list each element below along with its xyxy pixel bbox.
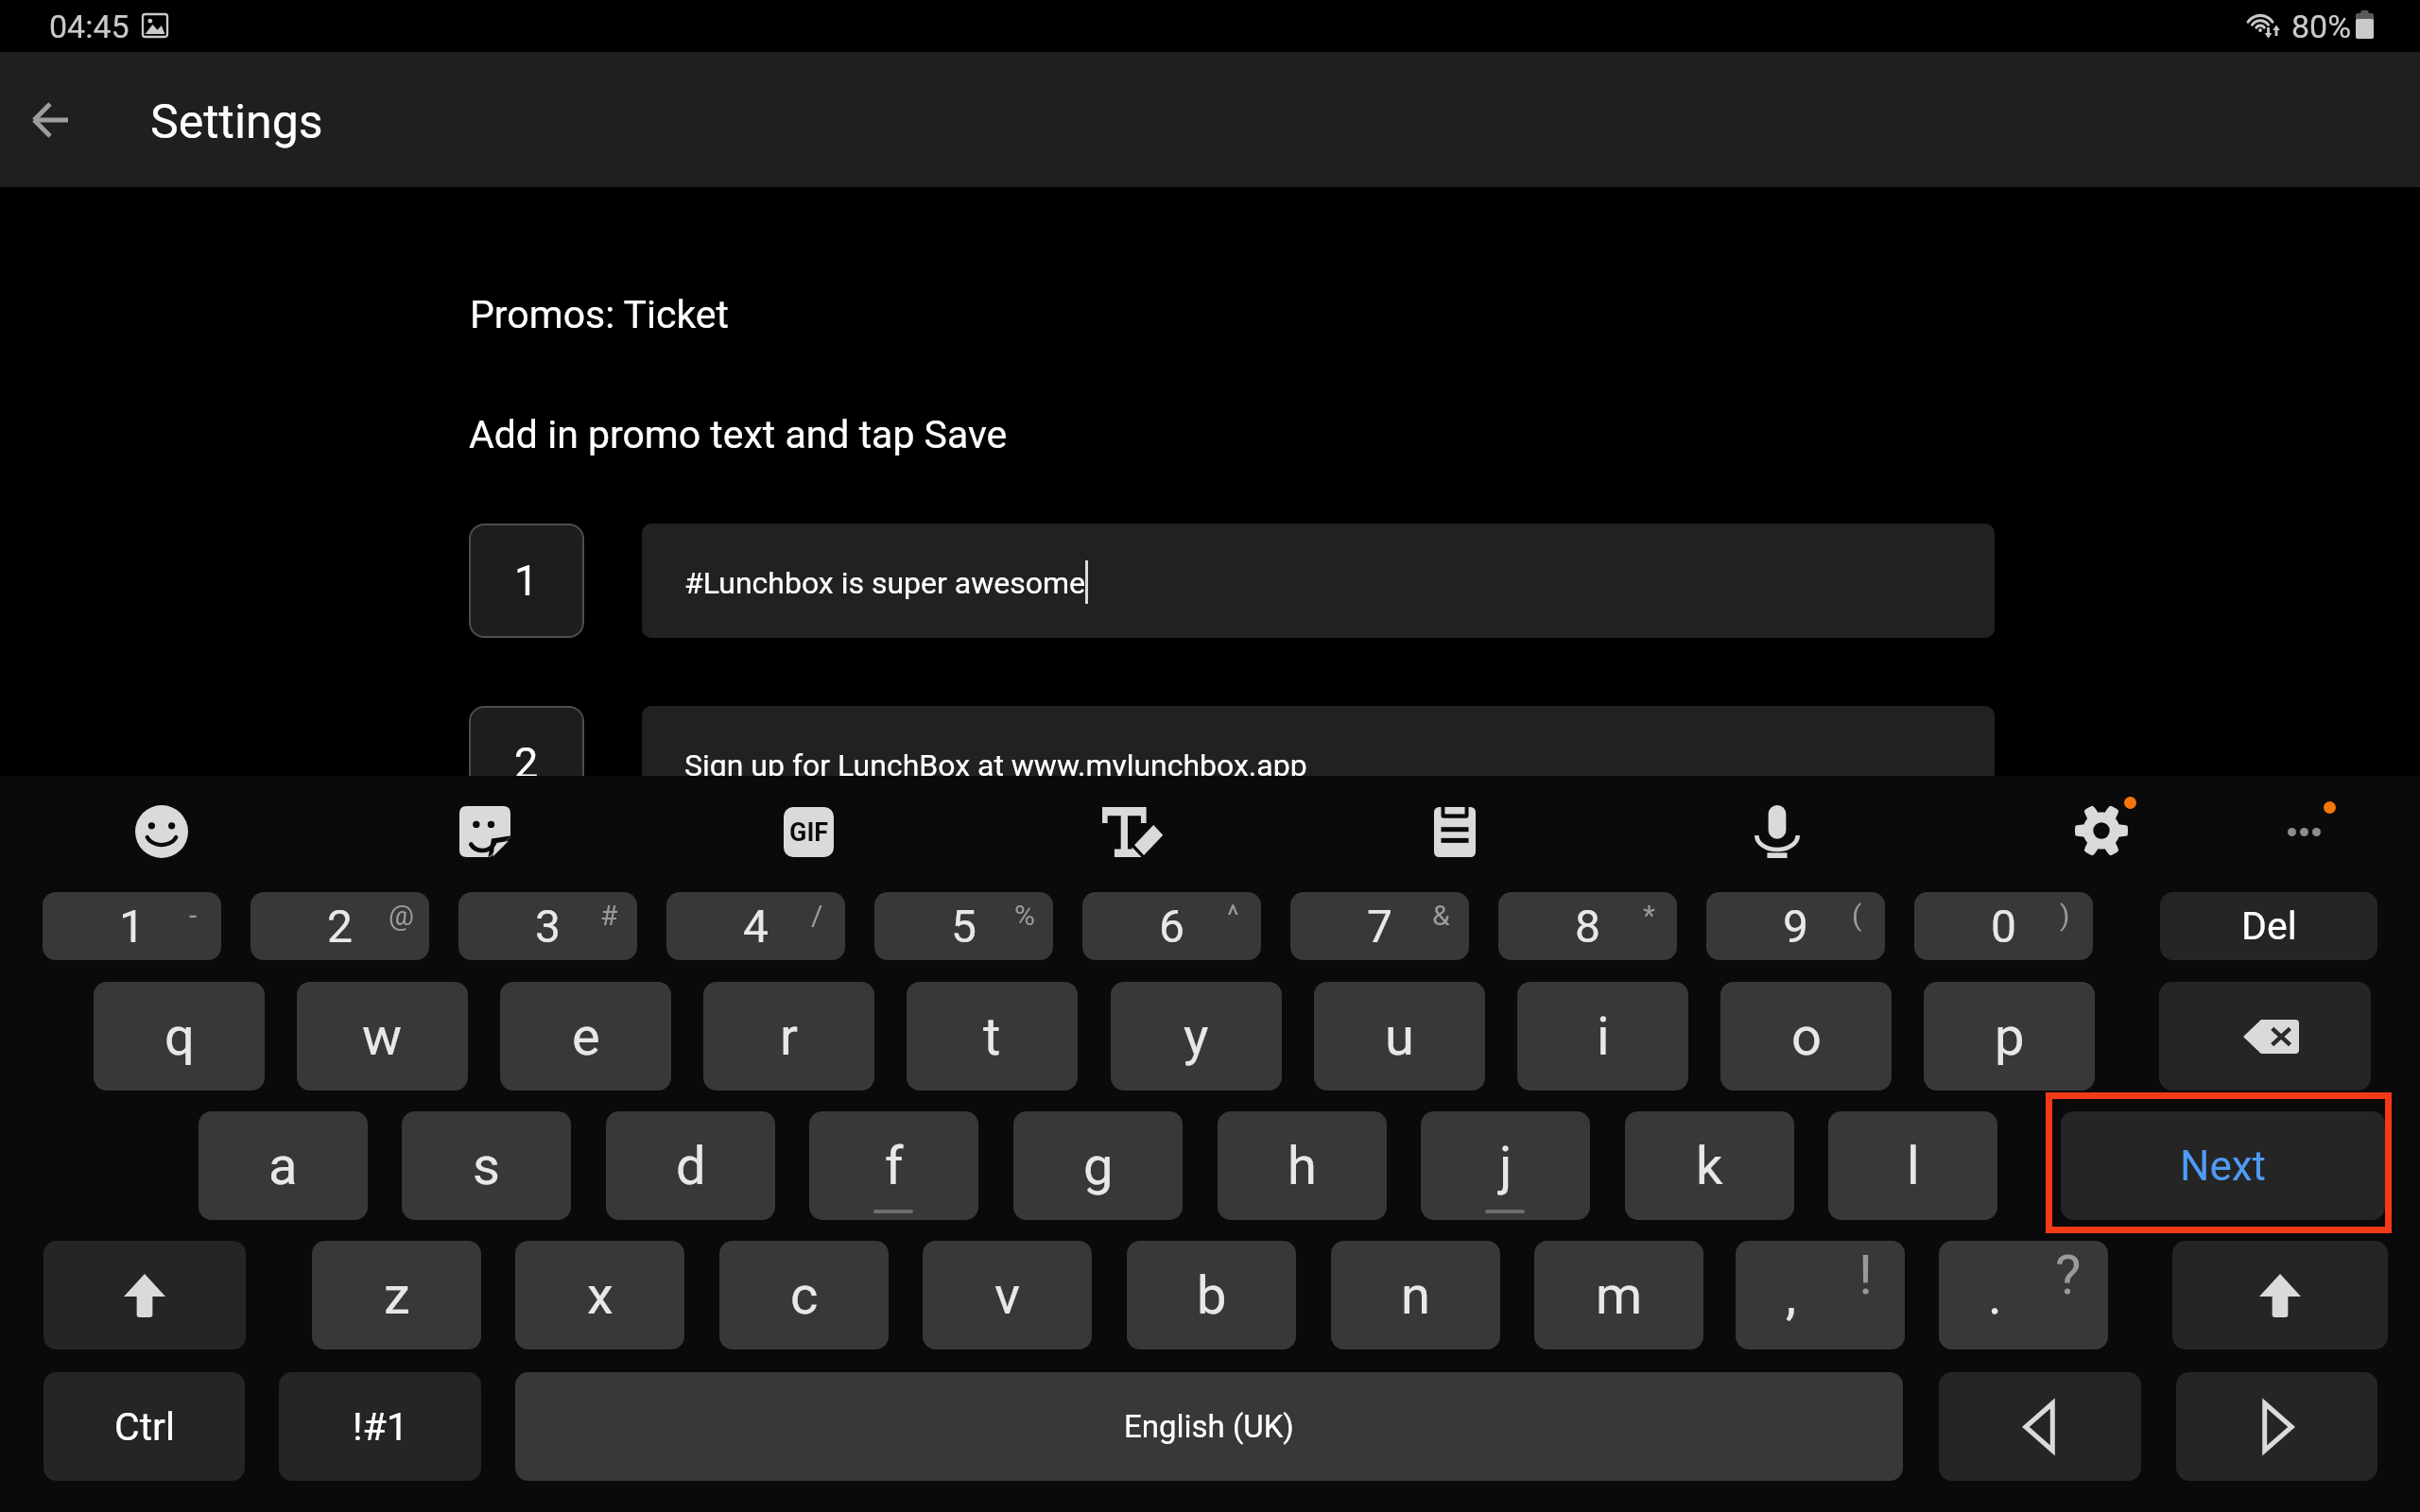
staticText: Promos: Ticket [470,292,729,337]
staticText: Ctrl [114,1404,175,1450]
button[interactable]: v [923,1241,1092,1349]
button[interactable]: p [1924,982,2095,1091]
staticText: , [1786,1264,1797,1327]
staticText: t [983,1005,1001,1068]
button[interactable]: c [719,1241,889,1349]
staticText: 7 [1367,900,1392,953]
button[interactable]: e [500,982,671,1091]
button[interactable]: Move cursor left [1939,1372,2141,1481]
button[interactable]: Settings [2045,775,2158,888]
button[interactable]: r [703,982,874,1091]
staticText: Settings [150,94,323,150]
button[interactable]: #Lunchbox is super awesome [642,524,1995,638]
button[interactable]: 6 [1082,892,1261,960]
staticText: x [587,1264,614,1327]
button[interactable]: Voice input [1720,775,1834,888]
staticText: g [1083,1135,1114,1197]
staticText: GIF [789,817,829,848]
staticText: ) [2060,899,2070,932]
staticText: Sign up for LunchBox at www.mylunchbox.a… [684,747,1307,783]
staticText: 5 [951,900,977,953]
staticText: 8 [1575,900,1600,953]
button[interactable]: d [606,1111,775,1220]
staticText: s [473,1135,500,1197]
button[interactable]: 3 [458,892,637,960]
button[interactable]: Sign up for LunchBox at www.mylunchbox.a… [642,706,1995,820]
staticText: b [1197,1264,1227,1327]
staticText: f [885,1135,904,1197]
staticText: ? [2055,1243,2082,1301]
button[interactable]: f [809,1111,978,1220]
button[interactable]: 4 [666,892,845,960]
button[interactable]: y [1111,982,1282,1091]
button[interactable]: t [907,982,1078,1091]
staticText: n [1401,1264,1430,1327]
button[interactable]: w [297,982,468,1091]
button[interactable]: 8 [1498,892,1677,960]
staticText: p [1995,1005,2025,1068]
staticText: u [1385,1005,1414,1068]
button[interactable]: Ctrl [43,1372,245,1481]
staticText: a [268,1135,298,1197]
staticText: j [1499,1135,1512,1197]
staticText: 1 [514,556,539,606]
button[interactable]: Shift [2172,1241,2388,1349]
staticText: # [600,899,618,932]
button[interactable]: g [1013,1111,1183,1220]
button[interactable]: 9 [1706,892,1885,960]
button[interactable]: o [1720,982,1892,1091]
button[interactable]: Clipboard [1398,775,1512,888]
button[interactable]: !#1 [279,1372,481,1481]
button[interactable]: u [1314,982,1485,1091]
button[interactable]: Emoji [105,775,218,888]
button[interactable]: k [1625,1111,1794,1220]
staticText: ( [1852,899,1862,932]
button[interactable]: Move cursor right [2176,1372,2377,1481]
staticText: - [189,899,198,932]
button[interactable]: i [1517,982,1688,1091]
button[interactable]: GIF [752,775,865,888]
button[interactable]: , [1736,1241,1905,1349]
button[interactable]: Next [2061,1111,2385,1220]
staticText: h [1288,1135,1317,1197]
staticText: 6 [1159,900,1184,953]
button[interactable]: l [1828,1111,1997,1220]
button[interactable]: n [1331,1241,1500,1349]
button[interactable]: 1 [469,524,584,638]
button[interactable]: a [199,1111,368,1220]
staticText: q [164,1005,195,1068]
staticText: y [1184,1005,1209,1068]
staticText: Del [2241,903,2297,949]
button[interactable]: j [1421,1111,1590,1220]
button[interactable]: b [1127,1241,1296,1349]
staticText: 2 [514,738,539,788]
staticText: / [811,899,823,932]
button[interactable]: h [1218,1111,1387,1220]
button[interactable]: . [1939,1241,2108,1349]
button[interactable]: x [515,1241,684,1349]
button[interactable]: 2 [469,706,584,820]
staticText: d [676,1135,706,1197]
button[interactable]: 0 [1914,892,2093,960]
button[interactable]: s [402,1111,571,1220]
button[interactable]: 2 [251,892,429,960]
button[interactable]: Del [2160,892,2377,960]
button[interactable]: English (UK) [515,1372,1903,1481]
staticText: % [1014,899,1035,932]
button[interactable]: 7 [1290,892,1469,960]
button[interactable]: 1 [43,892,221,960]
button[interactable]: 5 [874,892,1053,960]
button[interactable]: More options [2247,775,2360,888]
button[interactable]: q [94,982,265,1091]
staticText: Next [2180,1142,2266,1191]
staticText: 9 [1783,900,1808,953]
button[interactable]: Shift [43,1241,246,1349]
button[interactable]: Text editing [1075,775,1188,888]
button[interactable]: Backspace [2159,982,2371,1091]
button[interactable]: Back [12,82,88,158]
button[interactable]: m [1534,1241,1703,1349]
staticText: v [994,1264,1021,1327]
button[interactable]: Stickers [428,775,542,888]
staticText: c [790,1264,819,1327]
button[interactable]: z [312,1241,481,1349]
